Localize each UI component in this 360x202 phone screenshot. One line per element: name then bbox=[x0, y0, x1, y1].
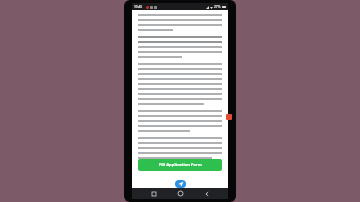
button[interactable]: Share bbox=[138, 180, 222, 188]
button[interactable]: Recents bbox=[149, 189, 158, 198]
button[interactable]: Fill Application Form bbox=[138, 159, 222, 171]
button[interactable]: Notification bbox=[226, 114, 232, 120]
staticText: 10:45 bbox=[134, 5, 143, 9]
button[interactable]: Home bbox=[176, 189, 185, 198]
staticText: 27% bbox=[214, 5, 221, 9]
button[interactable]: Back bbox=[202, 189, 211, 198]
staticText: Fill Application Form bbox=[159, 162, 202, 168]
other: Share bbox=[175, 180, 186, 188]
